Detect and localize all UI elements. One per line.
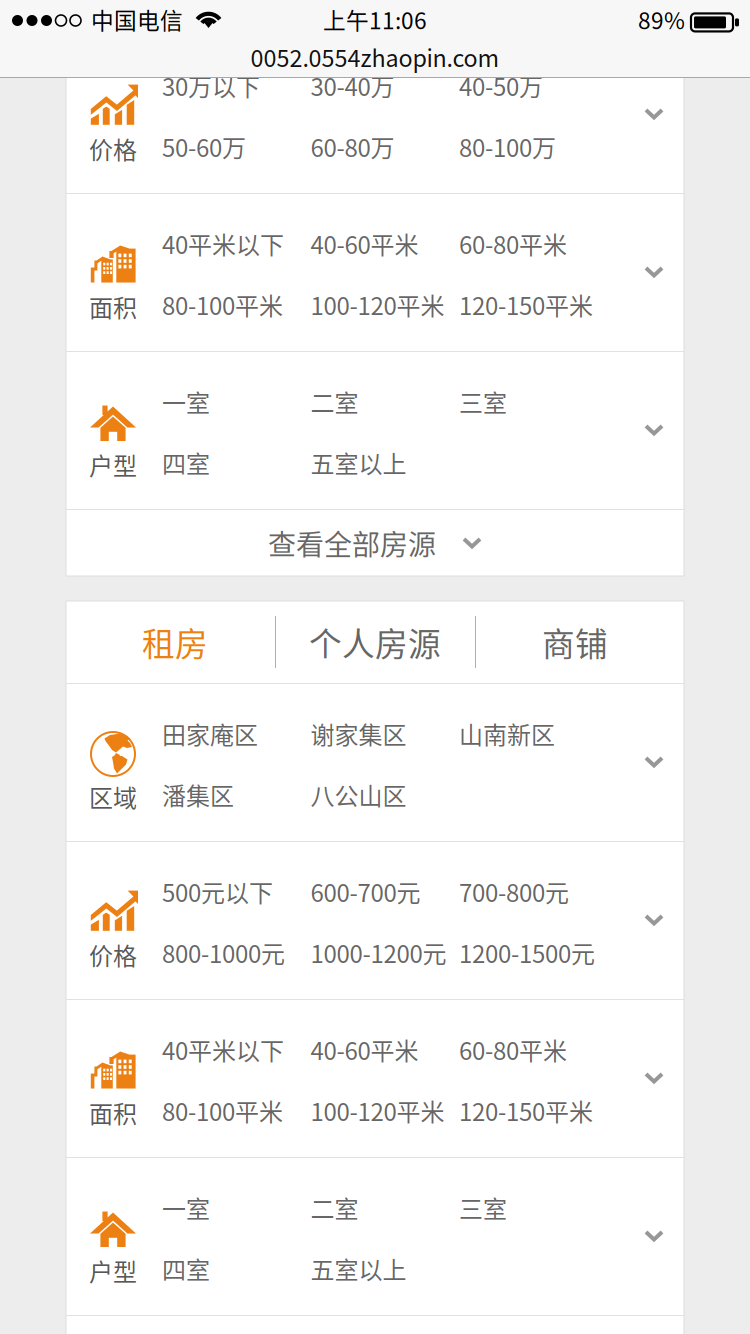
staticText: 三室 (459, 1190, 507, 1225)
staticText: 30-40万 (310, 68, 394, 103)
staticText: 五室以上 (310, 445, 406, 480)
staticText: 户型 (89, 447, 137, 482)
staticText: 四室 (162, 445, 210, 480)
staticText: 30万以下 (162, 68, 260, 103)
staticText: 120-150平米 (459, 287, 593, 322)
button[interactable]: 户型 (66, 352, 684, 509)
staticText: 租房 (142, 618, 208, 666)
staticText: 80-100万 (459, 129, 556, 164)
staticText: 500元以下 (162, 874, 273, 909)
staticText: 一室 (162, 1190, 210, 1225)
staticText: 89% (638, 3, 685, 36)
staticText: 800-1000元 (162, 935, 285, 970)
staticText: 二室 (310, 1190, 358, 1225)
staticText: 面积 (89, 289, 137, 324)
button[interactable]: 个人房源 (275, 601, 475, 683)
staticText: 600-700元 (310, 874, 420, 909)
staticText: 700-800元 (459, 874, 569, 909)
button[interactable]: 价格 (66, 36, 684, 193)
staticText: 80-100平米 (162, 287, 283, 322)
staticText: 60-80平米 (459, 1032, 567, 1067)
button[interactable]: 面积 (66, 194, 684, 351)
staticText: 40-60平米 (310, 1032, 418, 1067)
staticText: 潘集区 (162, 777, 234, 812)
button[interactable]: 查看全部房源 (66, 510, 684, 576)
staticText: 40-60平米 (310, 226, 418, 261)
staticText: 中国电信 (91, 3, 183, 36)
staticText: 价格 (89, 937, 137, 972)
staticText: 100-120平米 (310, 1093, 444, 1128)
staticText: 120-150平米 (459, 1093, 593, 1128)
staticText: 上午11:06 (323, 3, 427, 36)
staticText: 1000-1200元 (310, 935, 446, 970)
button[interactable]: 面积 (66, 1000, 684, 1157)
staticText: 1200-1500元 (459, 935, 595, 970)
button[interactable]: 区域 (66, 684, 684, 841)
staticText: 三室 (459, 384, 507, 419)
staticText: 100-120平米 (310, 287, 444, 322)
staticText: 50-60万 (162, 129, 246, 164)
button[interactable]: 价格 (66, 842, 684, 999)
staticText: 四室 (162, 1251, 210, 1286)
staticText: 0052.0554zhaopin.com (250, 40, 499, 74)
staticText: 面积 (89, 1095, 137, 1130)
staticText: 二室 (310, 384, 358, 419)
staticText: 田家庵区 (162, 716, 258, 751)
button[interactable]: 户型 (66, 1158, 684, 1315)
staticText: 40-50万 (459, 68, 543, 103)
staticText: 40平米以下 (162, 1032, 284, 1067)
staticText: 户型 (89, 1253, 137, 1288)
staticText: 谢家集区 (310, 716, 406, 751)
staticText: 查看全部房源 (268, 523, 436, 563)
staticText: 60-80平米 (459, 226, 567, 261)
button[interactable]: 租房 (75, 601, 275, 683)
staticText: 40平米以下 (162, 226, 284, 261)
staticText: 山南新区 (459, 716, 555, 751)
staticText: 商铺 (542, 618, 608, 666)
button[interactable]: 商铺 (475, 601, 675, 683)
staticText: 价格 (89, 131, 137, 166)
staticText: 八公山区 (310, 777, 406, 812)
staticText: 个人房源 (309, 618, 441, 666)
staticText: 五室以上 (310, 1251, 406, 1286)
staticText: 80-100平米 (162, 1093, 283, 1128)
staticText: 区域 (89, 779, 137, 814)
staticText: 60-80万 (310, 129, 394, 164)
staticText: 一室 (162, 384, 210, 419)
